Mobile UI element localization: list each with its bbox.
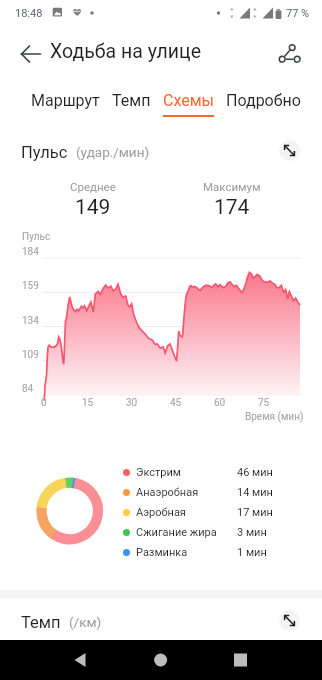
staticText: 3 мин: [237, 526, 267, 539]
staticText: 184: [22, 246, 39, 258]
staticText: 159: [22, 280, 39, 292]
button[interactable]: Развернуть: [279, 610, 300, 631]
staticText: Маршрут: [31, 91, 100, 110]
staticText: Темп: [21, 613, 61, 632]
staticText: (/км): [69, 614, 102, 630]
button[interactable]: Маршрут: [25, 91, 106, 117]
button[interactable]: Главный экран: [140, 640, 180, 680]
staticText: Максимум: [203, 180, 261, 193]
staticText: 75: [258, 397, 270, 409]
staticText: Темп: [112, 91, 151, 110]
staticText: Время (мин): [245, 411, 304, 423]
staticText: Пульс: [22, 231, 51, 243]
staticText: Среднее: [70, 180, 116, 193]
staticText: 134: [22, 315, 39, 327]
button[interactable]: Поделиться: [272, 36, 308, 72]
staticText: 84: [22, 383, 34, 395]
staticText: 45: [170, 397, 182, 409]
button[interactable]: Назад: [14, 37, 47, 70]
staticText: Экстрим: [136, 466, 182, 479]
button[interactable]: Схемы: [157, 91, 220, 117]
staticText: 18:48: [15, 7, 43, 20]
button[interactable]: Темп: [106, 91, 157, 117]
staticText: Аэробная: [136, 506, 186, 519]
staticText: 109: [22, 349, 39, 361]
staticText: 1 мин: [237, 546, 267, 559]
staticText: Разминка: [136, 546, 188, 559]
button[interactable]: Назад: [60, 640, 100, 680]
staticText: 30: [126, 397, 138, 409]
staticText: 14 мин: [237, 486, 273, 499]
staticText: (удар./мин): [76, 144, 150, 160]
staticText: Пульс: [21, 143, 68, 162]
staticText: 46 мин: [237, 466, 273, 479]
button[interactable]: Развернуть: [279, 140, 300, 161]
staticText: Схемы: [163, 91, 214, 110]
staticText: 174: [214, 195, 250, 220]
button[interactable]: Сжигание жира: [123, 522, 267, 542]
staticText: 60: [214, 397, 226, 409]
staticText: Подробно: [226, 91, 301, 110]
staticText: 15: [82, 397, 94, 409]
staticText: 77 %: [286, 7, 310, 20]
staticText: Ходьба на улице: [50, 40, 202, 63]
button[interactable]: Подробно: [220, 91, 307, 117]
button[interactable]: Экстрим: [123, 462, 273, 482]
staticText: 0: [41, 397, 47, 409]
button[interactable]: Последние приложения: [220, 640, 260, 680]
staticText: 17 мин: [237, 506, 273, 519]
button[interactable]: Анаэробная: [123, 482, 273, 502]
button[interactable]: Аэробная: [123, 502, 273, 522]
staticText: Анаэробная: [136, 486, 199, 499]
staticText: 149: [75, 195, 111, 220]
button[interactable]: Разминка: [123, 542, 267, 562]
staticText: Сжигание жира: [136, 526, 217, 539]
